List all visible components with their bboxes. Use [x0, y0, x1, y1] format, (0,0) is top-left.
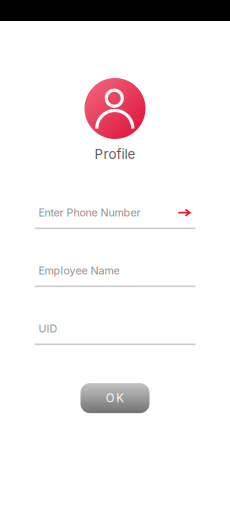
staticText: Enter Phone Number — [38, 206, 140, 219]
staticText: Employee Name — [38, 264, 119, 277]
button[interactable]: OK — [80, 383, 149, 413]
staticText: Profile — [94, 146, 135, 162]
staticText: UID — [38, 322, 57, 335]
staticText: OK — [106, 391, 124, 405]
